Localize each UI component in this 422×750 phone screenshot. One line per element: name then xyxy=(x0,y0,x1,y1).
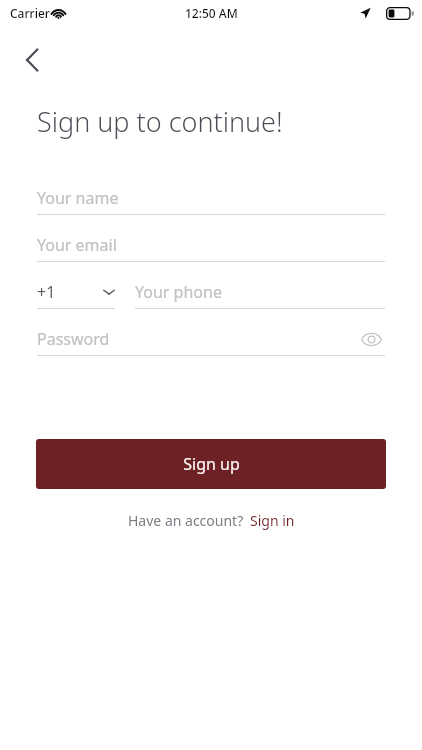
staticText: Have an account? xyxy=(128,511,244,530)
button[interactable]: Your email xyxy=(37,229,385,262)
staticText: Your email xyxy=(37,234,117,256)
staticText: Your name xyxy=(37,187,119,209)
other: Select country code xyxy=(103,288,115,296)
button[interactable]: Sign up xyxy=(36,439,386,489)
button[interactable]: Your name xyxy=(37,182,385,215)
button[interactable]: Password xyxy=(37,323,385,356)
staticText: +1 xyxy=(37,281,56,303)
button[interactable]: Your phone xyxy=(135,276,385,309)
staticText: Your phone xyxy=(135,281,222,303)
button[interactable]: Sign in xyxy=(250,511,295,530)
staticText: Password xyxy=(37,328,110,350)
button[interactable]: Show password xyxy=(357,325,385,353)
staticText: Carrier xyxy=(10,5,50,21)
button[interactable]: +1 xyxy=(37,276,115,309)
staticText: 12:50 AM xyxy=(185,5,238,21)
staticText: Sign up to continue! xyxy=(37,103,283,140)
staticText: Sign in xyxy=(250,511,295,530)
button[interactable]: Back xyxy=(10,38,54,82)
staticText: Sign up xyxy=(183,453,240,475)
